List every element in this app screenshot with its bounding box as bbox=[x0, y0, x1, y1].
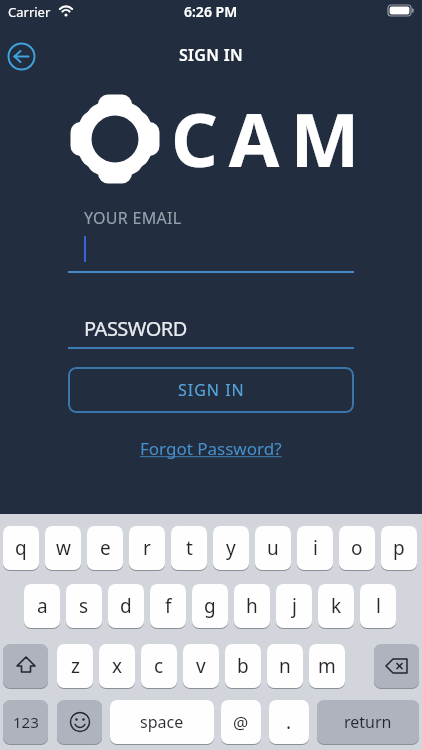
staticText: n bbox=[279, 653, 291, 679]
staticText: h bbox=[246, 593, 258, 619]
staticText: e bbox=[100, 535, 111, 561]
button[interactable]: k bbox=[318, 584, 354, 628]
button[interactable]: l bbox=[360, 584, 396, 628]
staticText: u bbox=[267, 535, 279, 561]
staticText: k bbox=[331, 593, 342, 619]
staticText: return bbox=[344, 711, 392, 733]
staticText: Carrier bbox=[8, 3, 51, 21]
staticText: x bbox=[112, 653, 123, 679]
staticText: w bbox=[56, 535, 71, 561]
button[interactable]: . bbox=[269, 700, 309, 744]
staticText: Forgot Password? bbox=[140, 437, 282, 460]
staticText: . bbox=[286, 709, 292, 735]
button[interactable]: Forgot Password? bbox=[140, 437, 282, 460]
button[interactable]: p bbox=[381, 526, 417, 570]
button[interactable] bbox=[7, 42, 36, 71]
button[interactable]: w bbox=[45, 526, 81, 570]
staticText: YOUR EMAIL bbox=[84, 207, 182, 229]
staticText: m bbox=[318, 653, 336, 679]
staticText: j bbox=[292, 593, 297, 619]
button[interactable]: q bbox=[3, 526, 39, 570]
button[interactable]: v bbox=[183, 644, 219, 688]
button[interactable]: SIGN IN bbox=[68, 367, 354, 413]
button[interactable]: r bbox=[129, 526, 165, 570]
staticText: d bbox=[120, 593, 132, 619]
staticText: a bbox=[37, 593, 48, 619]
button[interactable]: f bbox=[150, 584, 186, 628]
button[interactable]: @ bbox=[221, 700, 261, 744]
staticText: SIGN IN bbox=[179, 44, 243, 66]
button[interactable]: m bbox=[309, 644, 345, 688]
button[interactable]: n bbox=[267, 644, 303, 688]
button[interactable]: o bbox=[339, 526, 375, 570]
staticText: v bbox=[196, 653, 206, 679]
button[interactable]: e bbox=[87, 526, 123, 570]
button[interactable]: b bbox=[225, 644, 261, 688]
button[interactable]: u bbox=[255, 526, 291, 570]
staticText: @ bbox=[233, 711, 249, 734]
staticText: SIGN IN bbox=[178, 379, 245, 401]
button[interactable]: d bbox=[108, 584, 144, 628]
button[interactable] bbox=[57, 700, 102, 744]
button[interactable]: c bbox=[141, 644, 177, 688]
staticText: s bbox=[79, 593, 89, 619]
button[interactable]: return bbox=[317, 700, 419, 744]
button[interactable]: a bbox=[24, 584, 60, 628]
button[interactable] bbox=[3, 644, 48, 688]
staticText: p bbox=[393, 535, 405, 561]
button[interactable]: h bbox=[234, 584, 270, 628]
staticText: o bbox=[351, 535, 363, 561]
staticText: f bbox=[165, 593, 172, 619]
staticText: r bbox=[143, 535, 151, 561]
button[interactable]: t bbox=[171, 526, 207, 570]
staticText: i bbox=[313, 535, 318, 561]
staticText: 6:26 PM bbox=[184, 2, 238, 21]
staticText: t bbox=[186, 535, 193, 561]
staticText: z bbox=[71, 653, 80, 679]
staticText: b bbox=[237, 653, 249, 679]
staticText: q bbox=[15, 535, 27, 561]
button[interactable]: 123 bbox=[3, 700, 48, 744]
staticText: y bbox=[226, 535, 236, 561]
button[interactable]: i bbox=[297, 526, 333, 570]
staticText: l bbox=[376, 593, 381, 619]
button[interactable]: j bbox=[276, 584, 312, 628]
button[interactable]: z bbox=[57, 644, 93, 688]
button[interactable]: x bbox=[99, 644, 135, 688]
button[interactable]: g bbox=[192, 584, 228, 628]
staticText: PASSWORD bbox=[84, 315, 187, 342]
staticText: g bbox=[204, 593, 216, 619]
staticText: space bbox=[140, 711, 184, 733]
button[interactable]: space bbox=[110, 700, 214, 744]
staticText: c bbox=[154, 653, 164, 679]
button[interactable]: y bbox=[213, 526, 249, 570]
button[interactable]: s bbox=[66, 584, 102, 628]
button[interactable] bbox=[374, 644, 419, 688]
staticText: CAM bbox=[171, 89, 371, 181]
staticText: 123 bbox=[13, 712, 39, 732]
